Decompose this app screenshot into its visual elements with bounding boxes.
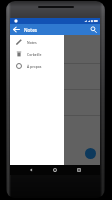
button[interactable]: Home [48,165,62,175]
staticText: Notes [27,40,37,45]
button[interactable]: Search [88,24,99,35]
button[interactable]: Notes [10,36,64,48]
button[interactable]: Add note [85,148,96,159]
button[interactable] [10,90,100,116]
button[interactable]: Open navigation drawer [11,24,22,35]
button[interactable]: Recent apps [72,165,86,175]
button[interactable]: Corbeille [10,48,64,60]
button[interactable]: À propos [10,60,64,72]
button[interactable] [10,38,100,64]
staticText: Corbeille [27,52,42,57]
staticText: Notes [24,27,38,33]
staticText: À propos [27,64,42,69]
button[interactable] [10,64,100,90]
button[interactable]: Back [24,165,38,175]
